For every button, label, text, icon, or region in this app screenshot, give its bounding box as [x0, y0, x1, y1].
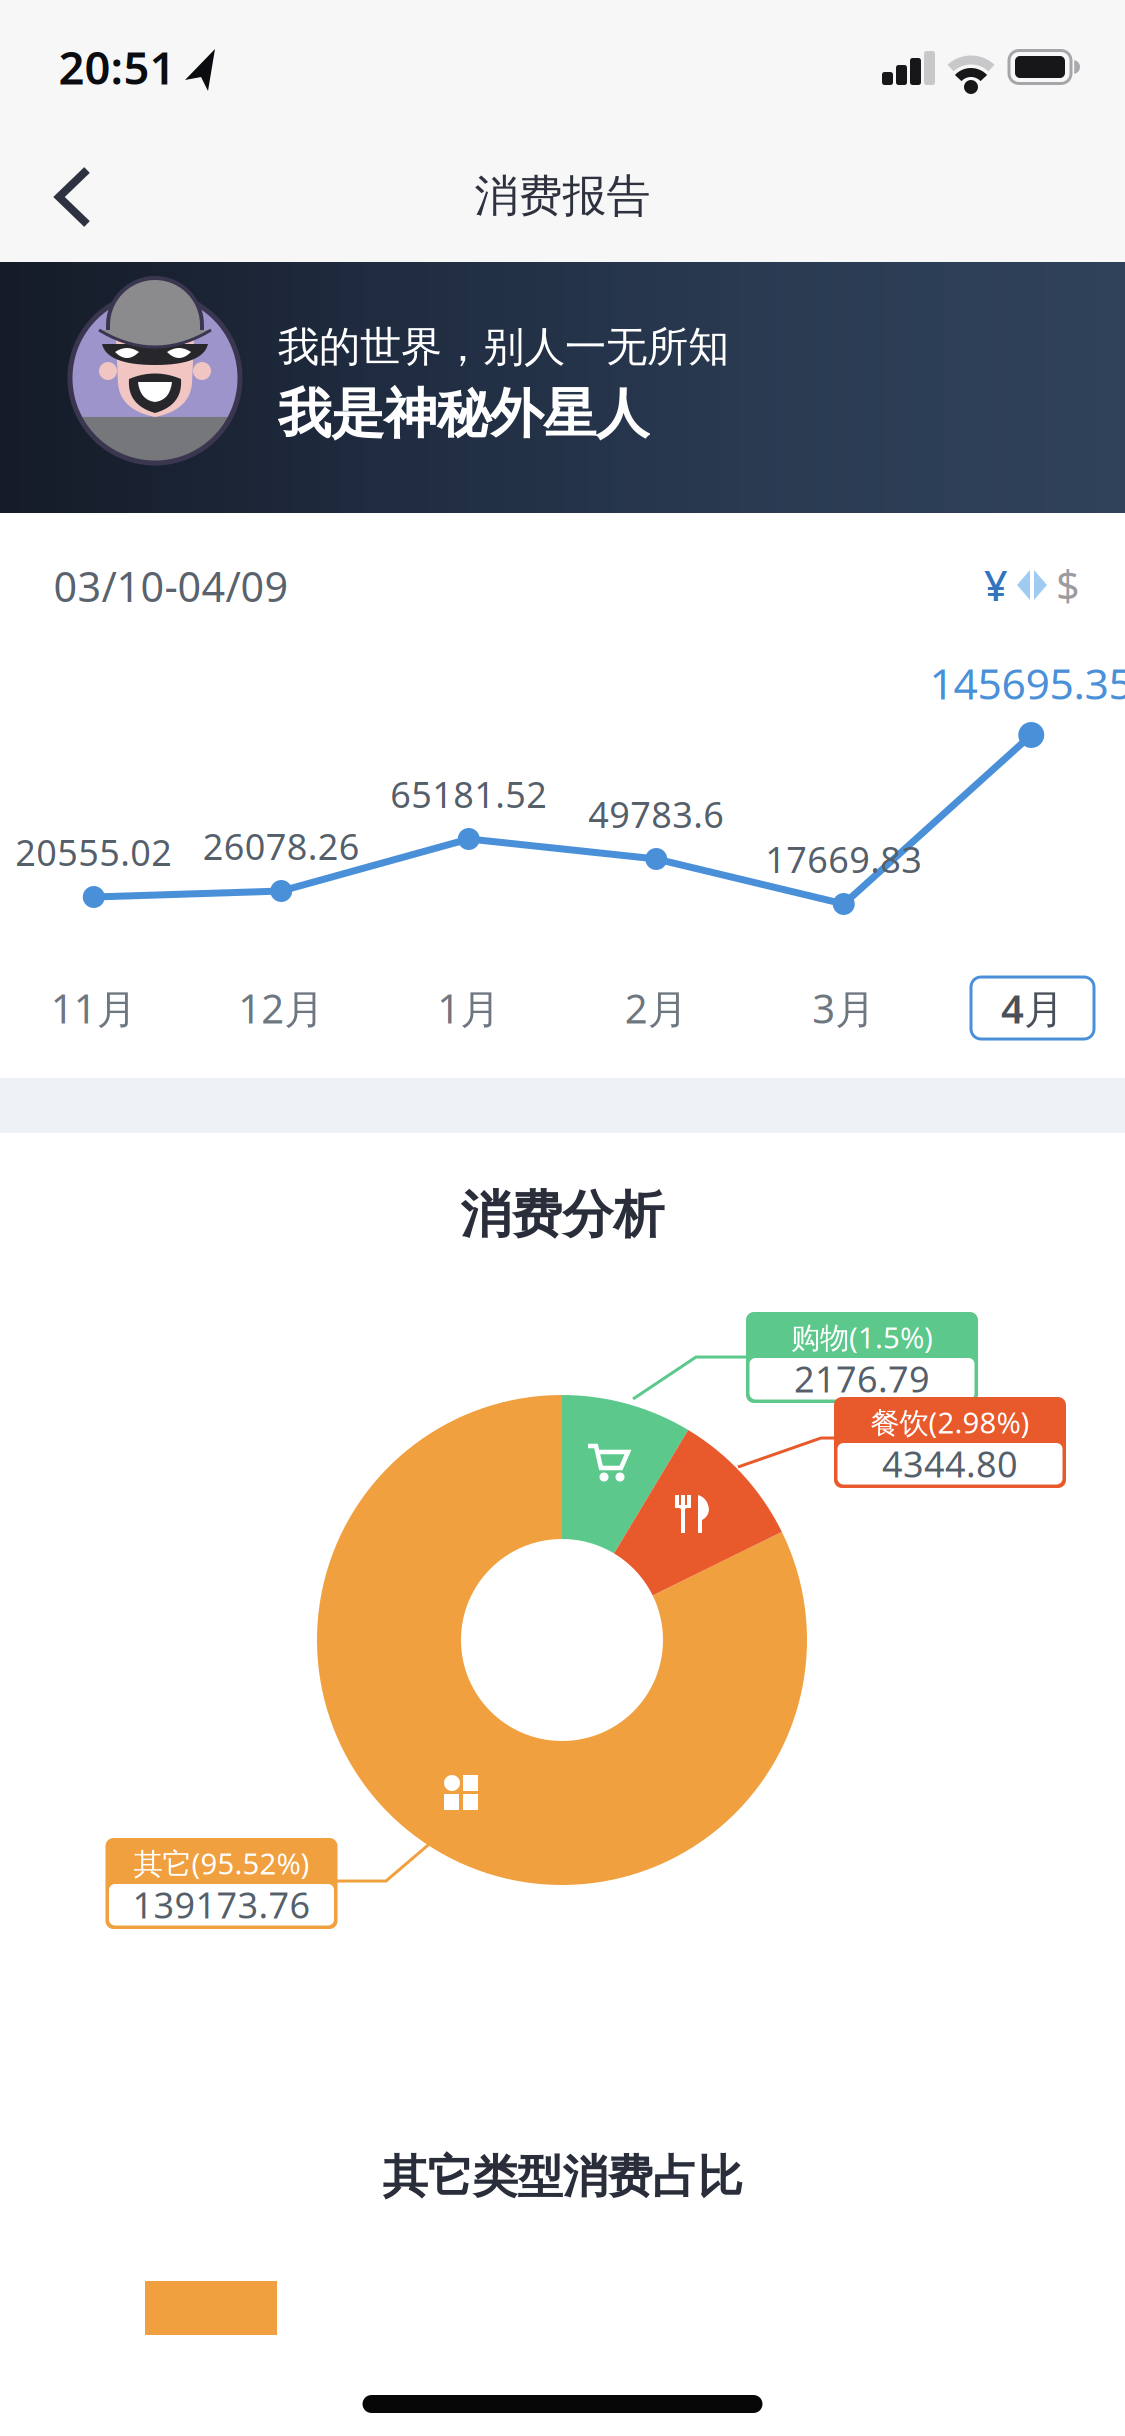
staticText: 2176.79 [794, 1355, 930, 1402]
staticText: 购物(1.5%) [791, 1317, 933, 1356]
staticText: 1月 [437, 981, 500, 1034]
button[interactable]: 12月 [238, 981, 324, 1034]
staticText: 2月 [625, 981, 688, 1034]
staticText: 我的世界，别人一无所知 [278, 322, 729, 372]
staticText: 20:51 [58, 37, 175, 97]
staticText: 消费报告 [474, 169, 650, 223]
staticText: 11月 [51, 981, 137, 1034]
staticText: 我是神秘外星人 [278, 381, 649, 447]
staticText: 其它(95.52%) [133, 1843, 309, 1882]
button[interactable]: 3月 [812, 981, 875, 1034]
staticText: 3月 [812, 981, 875, 1034]
staticText: ¥ [984, 558, 1008, 612]
staticText: 139173.76 [132, 1881, 310, 1928]
staticText: 03/10-04/09 [53, 559, 288, 613]
staticText: $ [1056, 558, 1080, 612]
button[interactable]: 11月 [51, 981, 137, 1034]
button[interactable]: 2月 [625, 981, 688, 1034]
staticText: 4344.80 [882, 1440, 1018, 1487]
staticText: 12月 [238, 981, 324, 1034]
staticText: 49783.6 [588, 790, 724, 838]
staticText: 65181.52 [390, 770, 547, 818]
button[interactable]: Switch currency [984, 558, 1080, 612]
staticText: 145695.35 [929, 655, 1125, 711]
staticText: 17669.83 [765, 835, 922, 883]
staticText: 其它类型消费占比 [382, 2149, 742, 2205]
button[interactable]: 4月 [971, 977, 1094, 1039]
staticText: 4月 [1001, 981, 1064, 1034]
staticText: 消费分析 [460, 1184, 664, 1246]
button[interactable]: 1月 [437, 981, 500, 1034]
button[interactable]: Back [0, 162, 110, 232]
staticText: 20555.02 [15, 828, 172, 876]
staticText: 26078.26 [203, 822, 360, 870]
staticText: 餐饮(2.98%) [870, 1402, 1029, 1441]
